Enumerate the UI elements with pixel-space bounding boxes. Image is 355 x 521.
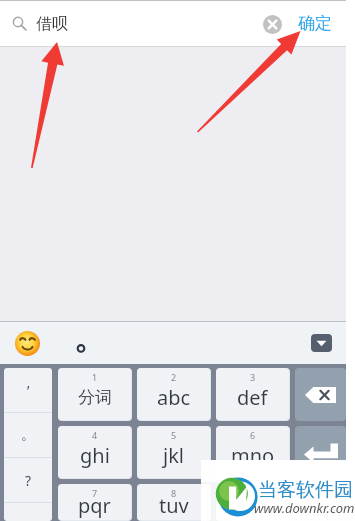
button[interactable]: 5 — [137, 426, 210, 478]
button[interactable]: Period — [72, 334, 90, 352]
staticText: wxy — [234, 492, 271, 519]
staticText: 8 — [171, 487, 177, 499]
staticText: ghi — [80, 442, 110, 469]
button[interactable]: 3 — [216, 368, 289, 420]
staticText: 5 — [171, 429, 177, 441]
button[interactable]: 4 — [58, 426, 131, 478]
staticText: pqr — [78, 492, 111, 519]
button[interactable] — [4, 503, 52, 521]
staticText: www.downkr.com — [254, 499, 355, 517]
button[interactable]: Enter — [295, 426, 346, 479]
button[interactable]: 9 — [216, 484, 289, 520]
staticText: ’ — [27, 381, 30, 400]
button[interactable]: Emoji — [15, 331, 40, 356]
staticText: def — [237, 384, 268, 411]
staticText: 当客软件园 — [258, 478, 353, 502]
button[interactable]: Clear text — [256, 8, 288, 40]
staticText: ? — [25, 471, 32, 490]
button[interactable]: ’ — [4, 368, 52, 412]
button[interactable] — [295, 484, 346, 521]
staticText: tuv — [159, 492, 189, 519]
staticText: abc — [157, 384, 191, 411]
button[interactable]: Hide keyboard — [311, 334, 332, 352]
staticText: 3 — [250, 371, 256, 383]
staticText: 。 — [21, 426, 35, 444]
button[interactable]: 。 — [4, 413, 52, 457]
button[interactable]: 6 — [216, 426, 289, 478]
other: Backspace — [305, 387, 336, 403]
button[interactable]: ? — [4, 458, 52, 502]
staticText: 6 — [250, 429, 256, 441]
button[interactable]: 确定 — [290, 7, 340, 40]
staticText: 1 — [92, 371, 98, 383]
staticText: mno — [231, 442, 275, 469]
other: Enter — [304, 443, 338, 463]
staticText: 分词 — [78, 387, 112, 408]
button[interactable]: Backspace — [295, 368, 346, 421]
button[interactable]: 2 — [137, 368, 210, 420]
staticText: 2 — [171, 371, 177, 383]
button[interactable]: 8 — [137, 484, 210, 520]
button[interactable]: 7 — [58, 484, 131, 520]
staticText: jkl — [163, 442, 184, 469]
staticText: 确定 — [298, 13, 332, 34]
staticText: 7 — [92, 487, 98, 499]
staticText: 9 — [250, 487, 256, 499]
button[interactable]: 1 — [58, 368, 131, 420]
staticText: 借呗 — [36, 14, 68, 34]
staticText: 4 — [92, 429, 98, 441]
